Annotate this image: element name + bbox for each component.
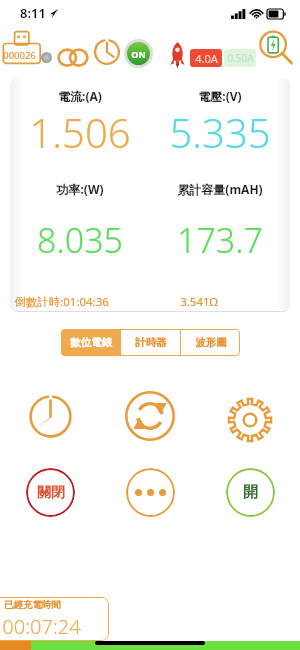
button[interactable]: Refresh (100, 388, 200, 444)
button[interactable]: ON (124, 39, 153, 68)
staticText: 3.541Ω (180, 294, 218, 310)
button[interactable]: Settings (200, 388, 300, 444)
staticText: 已經充電時間 (4, 599, 61, 611)
button[interactable]: Battery check (258, 30, 294, 66)
staticText: 累計容量(mAH) (177, 181, 263, 197)
staticText: 功率:(W) (56, 181, 104, 197)
button[interactable]: 計時器 (121, 329, 180, 356)
button[interactable]: 0.50A (224, 49, 256, 67)
staticText: 8:11 (20, 4, 46, 22)
staticText: 0.50A (227, 51, 254, 65)
staticText: 4.0A (195, 51, 218, 66)
button[interactable]: Device 000026 (2, 29, 44, 73)
staticText: 波形圖 (195, 336, 227, 349)
button[interactable]: Timer (92, 37, 122, 67)
button[interactable]: Connection (58, 46, 88, 66)
button[interactable]: Status indicator (41, 52, 52, 63)
staticText: 173.7 (177, 217, 263, 263)
staticText: 5.335 (169, 105, 271, 159)
button[interactable]: Countdown timer (0, 388, 100, 444)
staticText: 計時器 (135, 336, 167, 349)
staticText: 關閉 (37, 484, 65, 502)
button[interactable]: 開 (226, 468, 275, 517)
button[interactable]: 波形圖 (181, 329, 240, 356)
staticText: ON (131, 48, 146, 60)
staticText: 數位電錶 (70, 336, 112, 349)
button[interactable]: 關閉 (26, 468, 75, 517)
staticText: 電流:(A) (58, 88, 102, 104)
staticText: 倒數計時:01:04:36 (14, 294, 109, 310)
staticText: 00:07:24 (2, 613, 81, 640)
button[interactable] (126, 468, 175, 517)
button[interactable]: Quick charge (170, 42, 185, 68)
staticText: 8.035 (37, 217, 123, 263)
staticText: 電壓:(V) (198, 88, 242, 104)
staticText: 1.506 (29, 105, 131, 159)
button[interactable]: 數位電錶 (61, 329, 120, 356)
staticText: 000026 (3, 49, 36, 62)
button[interactable]: 4.0A (190, 49, 222, 67)
staticText: 開 (243, 483, 258, 502)
button[interactable]: 已經充電時間 (0, 597, 109, 641)
